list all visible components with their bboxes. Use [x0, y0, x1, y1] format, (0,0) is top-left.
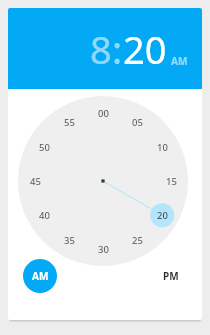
staticText: 8 [90, 23, 112, 75]
button[interactable]: PM [154, 259, 188, 293]
staticText: 30 [98, 243, 109, 256]
button[interactable]: 8 [90, 23, 112, 75]
staticText: AM [32, 269, 49, 283]
staticText: 50 [39, 141, 50, 154]
staticText: : [112, 23, 123, 75]
staticText: 05 [132, 116, 143, 129]
staticText: 10 [157, 141, 168, 154]
button[interactable]: AM [171, 54, 188, 68]
staticText: 25 [132, 234, 143, 247]
staticText: 45 [30, 175, 41, 188]
staticText: 00 [98, 107, 109, 120]
button[interactable]: Minute dial, 20 minutes selected [18, 96, 188, 266]
staticText: 35 [64, 234, 75, 247]
staticText: PM [163, 269, 179, 283]
button[interactable]: 20 [123, 23, 167, 75]
staticText: 20 [157, 209, 168, 222]
staticText: 20 [123, 23, 167, 75]
staticText: AM [171, 54, 188, 68]
staticText: 15 [166, 175, 177, 188]
button[interactable]: AM [23, 259, 57, 293]
staticText: 55 [64, 116, 75, 129]
staticText: 40 [39, 209, 50, 222]
